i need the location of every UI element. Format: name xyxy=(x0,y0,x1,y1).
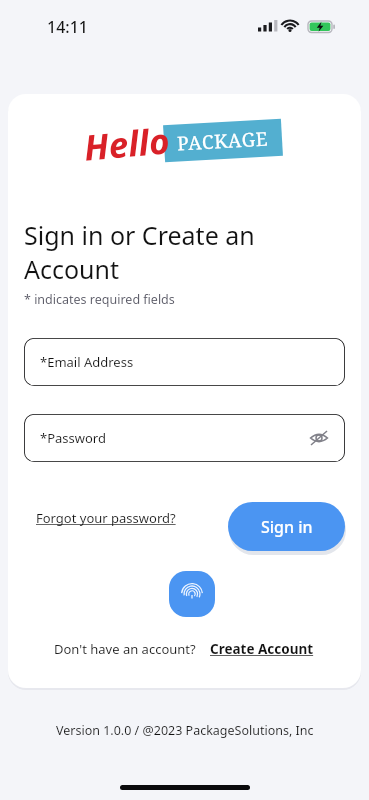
button[interactable]: Create Account xyxy=(208,636,316,662)
staticText: Create Account xyxy=(210,640,314,658)
staticText: 14:11 xyxy=(47,16,88,38)
staticText: * indicates required fields xyxy=(24,291,175,308)
staticText: *Email Address xyxy=(40,353,134,371)
staticText: Hello xyxy=(82,116,172,172)
staticText: PACKAGE xyxy=(176,125,270,157)
staticText: Version 1.0.0 / @2023 PackageSolutions, … xyxy=(56,722,314,739)
staticText: Sign in xyxy=(261,516,313,538)
staticText: Sign in or Create an Account xyxy=(24,218,255,286)
button[interactable]: Sign in with fingerprint xyxy=(169,571,215,617)
staticText: Forgot your password? xyxy=(36,509,176,527)
staticText: Don't have an account? xyxy=(54,640,196,658)
button[interactable]: *Email Address xyxy=(24,338,345,386)
button[interactable]: Sign in xyxy=(228,502,345,551)
button[interactable]: Show password xyxy=(305,424,333,452)
button[interactable]: *Password xyxy=(24,414,345,462)
staticText: *Password xyxy=(40,429,106,447)
button[interactable]: Forgot your password? xyxy=(34,505,178,531)
